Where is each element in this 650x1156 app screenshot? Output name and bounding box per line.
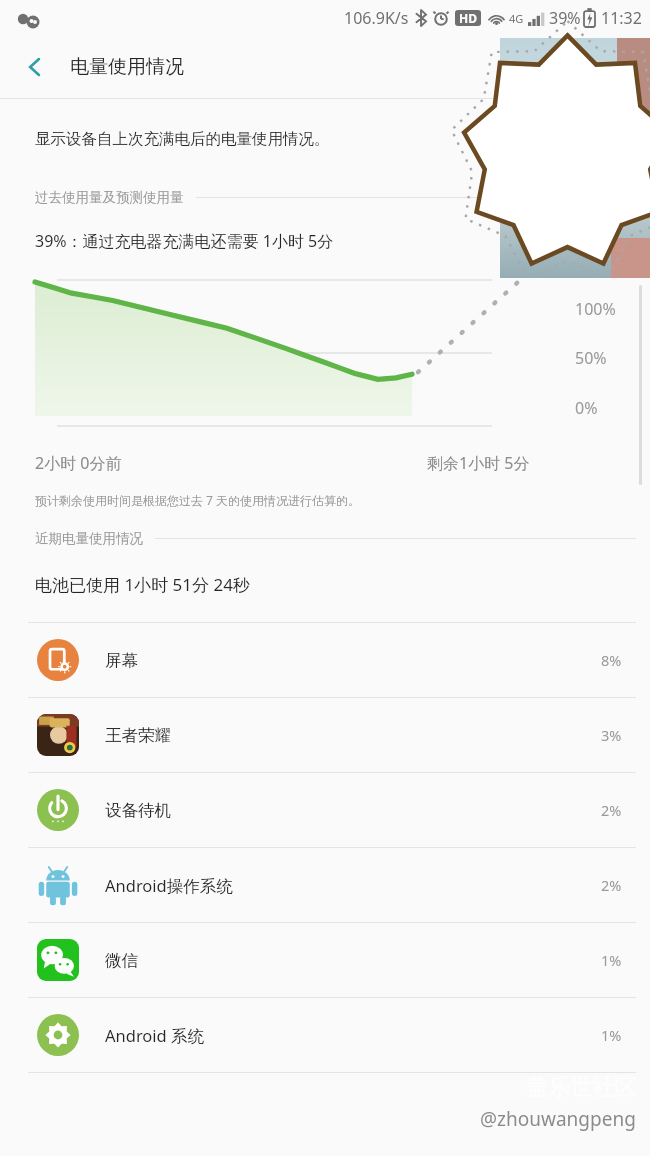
staticText: 王者荣耀 — [105, 725, 601, 746]
staticText: 106.9K/s — [344, 7, 409, 29]
staticText: 屏幕 — [105, 650, 601, 671]
staticText: 设备待机 — [105, 800, 601, 821]
button[interactable]: Back — [0, 36, 70, 98]
staticText: 0% — [575, 397, 598, 419]
staticText: 显示设备自上次充满电后的电量使用情况。 — [35, 129, 330, 149]
button[interactable]: 屏幕 — [0, 623, 650, 697]
staticText: 8% — [601, 650, 622, 670]
staticText: 4G — [509, 11, 524, 26]
staticText: 39%：通过充电器充满电还需要 1小时 5分 — [35, 230, 334, 252]
button[interactable]: 王者荣耀 — [0, 698, 650, 772]
staticText: 过去使用量及预测使用量 — [35, 189, 184, 206]
staticText: 2% — [601, 800, 622, 820]
staticText: 2% — [601, 875, 622, 895]
staticText: 预计剩余使用时间是根据您过去 7 天的使用情况进行估算的。 — [35, 492, 361, 508]
staticText: 近期电量使用情况 — [35, 530, 143, 547]
staticText: 微信 — [105, 950, 601, 971]
staticText: @zhouwangpeng — [480, 1106, 636, 1132]
staticText: Android操作系统 — [105, 874, 601, 897]
button[interactable]: 微信 — [0, 923, 650, 997]
staticText: Android 系统 — [105, 1024, 601, 1047]
staticText: 11:32 — [601, 7, 642, 29]
staticText: 1% — [601, 1025, 622, 1045]
staticText: 电池已使用 1小时 51分 24秒 — [35, 573, 250, 596]
staticText: 1% — [601, 950, 622, 970]
button[interactable]: Android操作系统 — [0, 848, 650, 922]
staticText: 50% — [575, 347, 607, 369]
staticText: 电量使用情况 — [70, 55, 184, 79]
staticText: 2小时 0分前 — [35, 452, 122, 474]
staticText: HD — [459, 10, 477, 26]
staticText: 剩余1小时 5分 — [427, 452, 530, 474]
staticText: 100% — [575, 298, 616, 320]
staticText: 39% — [549, 7, 581, 29]
button[interactable]: Android 系统 — [0, 998, 650, 1072]
staticText: 3% — [601, 725, 622, 745]
button[interactable]: 设备待机 — [0, 773, 650, 847]
